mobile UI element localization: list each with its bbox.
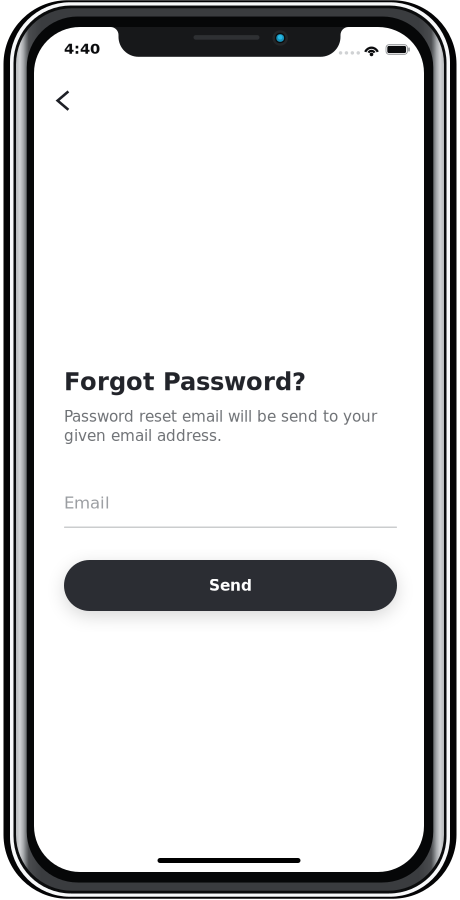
staticText: Password reset email will be send to you…	[64, 408, 377, 445]
button[interactable]: Send	[64, 560, 397, 611]
staticText: 4:40	[64, 40, 100, 57]
button[interactable]: Back	[40, 78, 86, 124]
staticText: Send	[209, 577, 252, 594]
staticText: Forgot Password?	[64, 368, 306, 396]
staticText: Email	[64, 493, 110, 512]
